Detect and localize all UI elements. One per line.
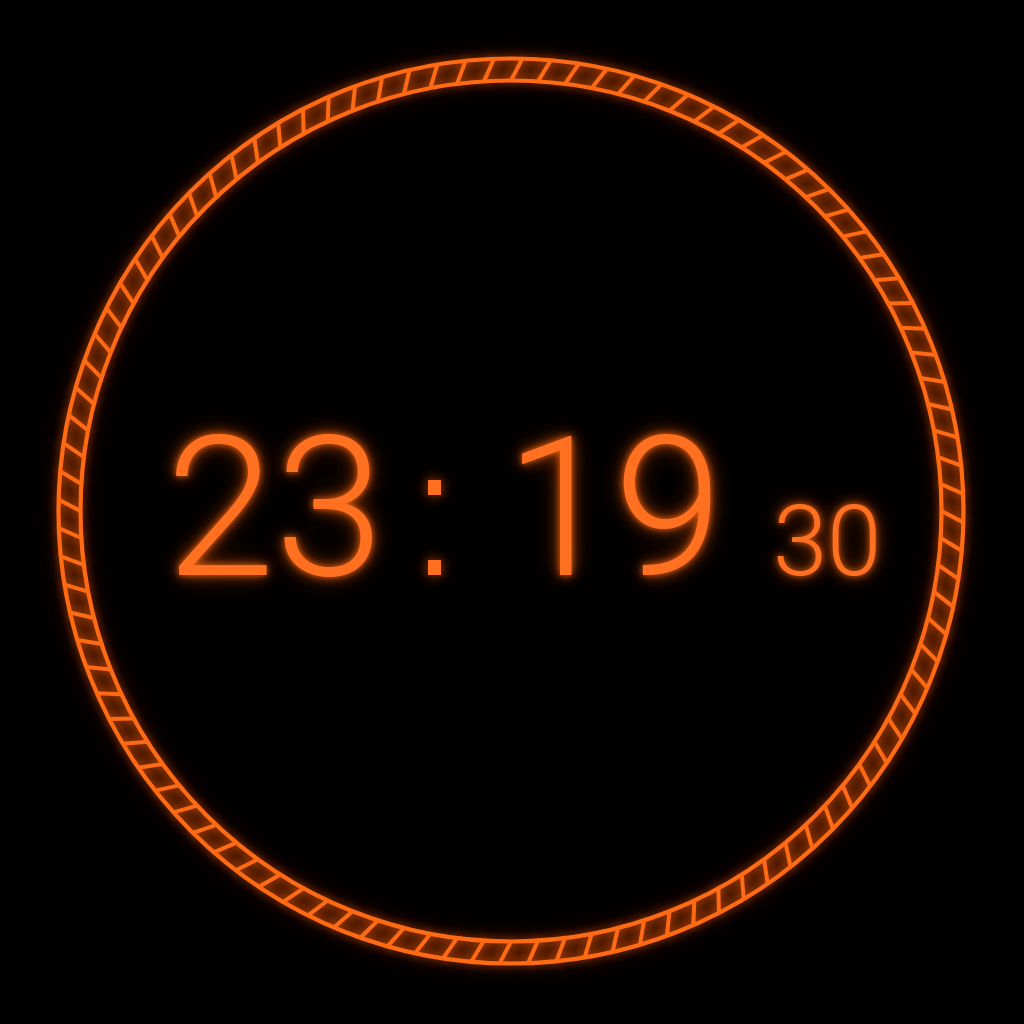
button[interactable]: Neon ring watch face showing 23:19:30 bbox=[0, 0, 1024, 1024]
